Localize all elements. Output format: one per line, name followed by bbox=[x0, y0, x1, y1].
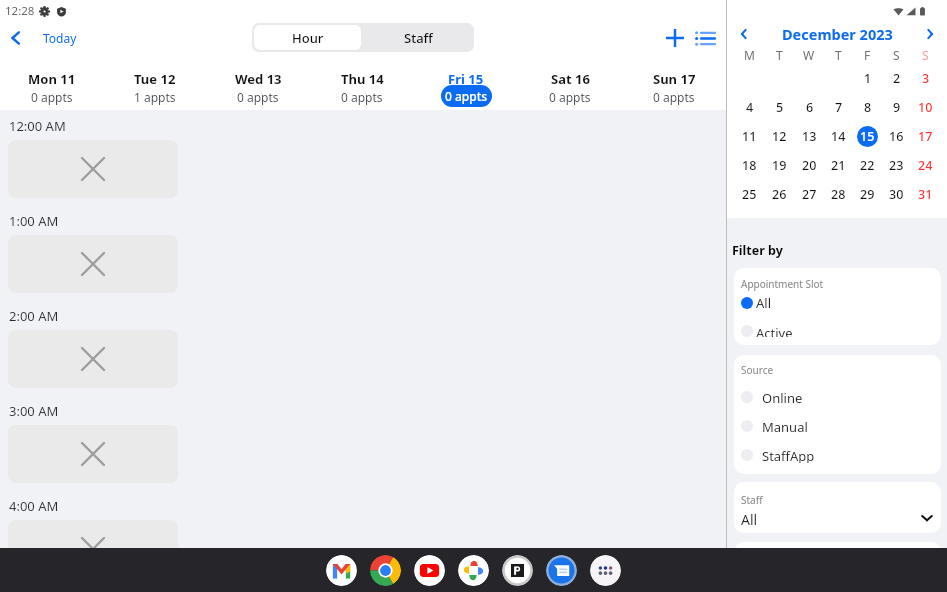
staticText: 4:00 AM bbox=[9, 497, 59, 515]
button[interactable]: 23 bbox=[886, 155, 907, 176]
staticText: 31 bbox=[918, 186, 933, 203]
staticText: F bbox=[864, 47, 871, 63]
staticText: Tue 12 bbox=[134, 70, 176, 88]
button[interactable]: Fri 15 bbox=[414, 58, 518, 110]
button[interactable]: Sun 17 bbox=[622, 58, 726, 110]
button[interactable]: Photos bbox=[458, 555, 489, 586]
button[interactable]: 13 bbox=[799, 126, 820, 147]
button[interactable]: Apps bbox=[590, 555, 621, 586]
button[interactable]: 14 bbox=[828, 126, 849, 147]
staticText: 12:00 AM bbox=[9, 117, 66, 135]
button[interactable]: Chrome bbox=[370, 555, 401, 586]
button[interactable]: 22 bbox=[857, 155, 878, 176]
button[interactable]: Mon 11 bbox=[0, 58, 103, 110]
staticText: Online bbox=[762, 389, 803, 405]
staticText: 17 bbox=[918, 128, 933, 145]
button[interactable]: Messages bbox=[546, 555, 577, 586]
button[interactable]: 8 bbox=[857, 97, 878, 118]
button[interactable]: 7 bbox=[828, 97, 849, 118]
staticText: 7 bbox=[835, 99, 843, 116]
button[interactable]: 3 bbox=[915, 68, 936, 89]
staticText: 0 appts bbox=[653, 89, 695, 105]
button[interactable]: Manual bbox=[741, 418, 933, 434]
button[interactable]: 9 bbox=[886, 97, 907, 118]
button[interactable]: 26 bbox=[769, 184, 790, 205]
button[interactable]: Add appointment bbox=[660, 23, 690, 53]
button[interactable] bbox=[8, 140, 178, 198]
button[interactable]: 10 bbox=[915, 97, 936, 118]
staticText: 28 bbox=[831, 186, 846, 203]
button[interactable]: Play bbox=[502, 555, 533, 586]
staticText: Manual bbox=[762, 418, 808, 434]
staticText: 21 bbox=[831, 157, 846, 174]
button[interactable]: 28 bbox=[828, 184, 849, 205]
staticText: Appointment Slot bbox=[741, 277, 824, 291]
button[interactable]: StaffApp bbox=[741, 447, 933, 463]
button[interactable]: 11 bbox=[739, 126, 760, 147]
staticText: 12:28 bbox=[5, 3, 35, 19]
button[interactable]: 16 bbox=[886, 126, 907, 147]
staticText: Sun 17 bbox=[653, 70, 696, 88]
staticText: December 2023 bbox=[782, 24, 893, 44]
button[interactable]: Thu 14 bbox=[310, 58, 414, 110]
button[interactable]: Today bbox=[3, 24, 79, 52]
staticText: M bbox=[744, 47, 755, 63]
staticText: 27 bbox=[802, 186, 817, 203]
button[interactable]: 27 bbox=[799, 184, 820, 205]
staticText: 3 bbox=[922, 70, 930, 87]
button[interactable]: 15 bbox=[857, 126, 878, 147]
staticText: 18 bbox=[742, 157, 757, 174]
button[interactable]: 4 bbox=[739, 97, 760, 118]
button[interactable]: 31 bbox=[915, 184, 936, 205]
button[interactable]: 20 bbox=[799, 155, 820, 176]
staticText: Mon 11 bbox=[28, 70, 76, 88]
button[interactable] bbox=[8, 235, 178, 293]
button[interactable]: 21 bbox=[828, 155, 849, 176]
button[interactable]: Wed 13 bbox=[206, 58, 310, 110]
button[interactable]: 1 bbox=[857, 68, 878, 89]
button[interactable]: 19 bbox=[769, 155, 790, 176]
button[interactable]: 5 bbox=[769, 97, 790, 118]
button[interactable]: Staff bbox=[363, 23, 474, 52]
button[interactable]: List view bbox=[690, 23, 720, 53]
staticText: S bbox=[922, 47, 929, 63]
staticText: 29 bbox=[860, 186, 875, 203]
button[interactable]: 6 bbox=[799, 97, 820, 118]
staticText: S bbox=[893, 47, 900, 63]
button[interactable]: Gmail bbox=[326, 555, 357, 586]
staticText: Active bbox=[756, 324, 793, 337]
button[interactable] bbox=[8, 425, 178, 483]
button[interactable]: 12 bbox=[769, 126, 790, 147]
button[interactable]: YouTube bbox=[414, 555, 445, 586]
staticText: 25 bbox=[742, 186, 757, 203]
staticText: 12 bbox=[772, 128, 787, 145]
button[interactable]: Active bbox=[741, 324, 933, 337]
button[interactable]: All bbox=[741, 510, 933, 525]
staticText: 8 bbox=[864, 99, 872, 116]
button[interactable] bbox=[8, 520, 178, 578]
button[interactable]: 29 bbox=[857, 184, 878, 205]
staticText: 16 bbox=[889, 128, 904, 145]
staticText: T bbox=[835, 47, 842, 63]
button[interactable]: Next month bbox=[919, 23, 941, 45]
button[interactable]: Online bbox=[741, 389, 933, 405]
staticText: 5 bbox=[776, 99, 784, 116]
button[interactable] bbox=[8, 330, 178, 388]
staticText: 2 bbox=[893, 70, 901, 87]
button[interactable]: 25 bbox=[739, 184, 760, 205]
button[interactable]: Hour bbox=[254, 25, 361, 50]
staticText: 0 appts bbox=[31, 89, 73, 105]
button[interactable]: 17 bbox=[915, 126, 936, 147]
staticText: Thu 14 bbox=[341, 70, 384, 88]
button[interactable]: 24 bbox=[915, 155, 936, 176]
button[interactable]: 18 bbox=[739, 155, 760, 176]
button[interactable]: Sat 16 bbox=[518, 58, 622, 110]
button[interactable]: Tue 12 bbox=[103, 58, 206, 110]
staticText: Fri 15 bbox=[448, 70, 484, 88]
staticText: 0 appts bbox=[237, 89, 279, 105]
button[interactable]: 30 bbox=[886, 184, 907, 205]
button[interactable]: All bbox=[741, 294, 933, 312]
button[interactable]: 2 bbox=[886, 68, 907, 89]
staticText: 0 appts bbox=[341, 89, 383, 105]
button[interactable]: Previous month bbox=[733, 23, 755, 45]
